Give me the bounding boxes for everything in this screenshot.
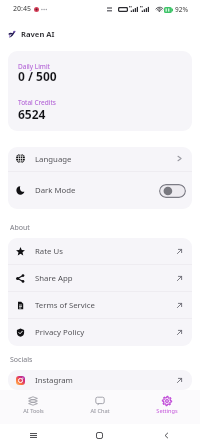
- staticText: Dark Mode: [35, 185, 76, 196]
- button[interactable]: Share App: [8, 265, 192, 292]
- other: Recents: [30, 432, 37, 439]
- button[interactable]: Back: [133, 432, 200, 439]
- staticText: Daily Limit: [18, 62, 50, 71]
- staticText: AI Tools: [23, 407, 44, 415]
- staticText: 20:45: [13, 4, 31, 14]
- button[interactable]: Dark Mode: [8, 172, 192, 209]
- other: Home: [96, 432, 103, 439]
- button[interactable]: Rate Us: [8, 238, 192, 265]
- staticText: Socials: [10, 355, 33, 365]
- staticText: 0 / 500: [18, 68, 57, 84]
- button[interactable]: Settings: [133, 393, 200, 422]
- staticText: AI Chat: [90, 407, 110, 415]
- staticText: Terms of Service: [35, 300, 95, 311]
- button[interactable]: Privacy Policy: [8, 319, 192, 346]
- staticText: Share App: [35, 273, 73, 284]
- staticText: 92%: [175, 5, 188, 14]
- staticText: About: [10, 223, 30, 233]
- button[interactable]: Recents: [0, 432, 66, 439]
- button[interactable]: Dark Mode toggle: [159, 184, 186, 198]
- button[interactable]: Language: [8, 147, 192, 172]
- other: Back: [163, 432, 170, 439]
- staticText: 6524: [18, 106, 46, 122]
- staticText: Language: [35, 154, 72, 165]
- button[interactable]: AI Tools: [0, 393, 66, 422]
- button[interactable]: Instagram: [8, 370, 192, 390]
- staticText: Settings: [156, 407, 178, 415]
- staticText: Instagram: [35, 375, 73, 386]
- staticText: Privacy Policy: [35, 327, 85, 338]
- button[interactable]: AI Chat: [66, 393, 133, 422]
- button[interactable]: Daily Limit: [8, 51, 192, 131]
- staticText: Rate Us: [35, 246, 63, 257]
- staticText: Total Credits: [18, 98, 56, 107]
- button[interactable]: Terms of Service: [8, 292, 192, 319]
- staticText: Raven AI: [21, 29, 55, 39]
- button[interactable]: Home: [66, 432, 133, 439]
